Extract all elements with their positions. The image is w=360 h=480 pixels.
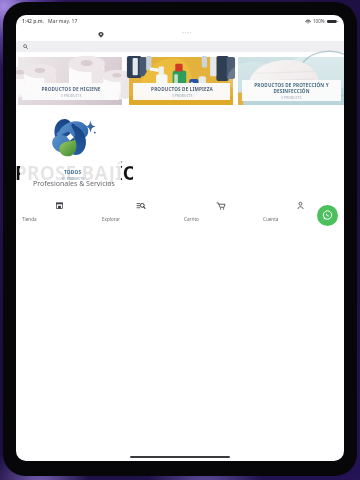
button[interactable]: PRODUCTOS DE PROTECCIÓN Y DESINFECCIÓN: [238, 57, 344, 105]
staticText: 1:42 p.m.: [22, 18, 44, 25]
staticText: PRODUCTOS DE LIMPIEZA: [151, 86, 213, 92]
button[interactable]: PRODUCTOS DE HIGIENE: [18, 57, 122, 105]
staticText: Carrito: [184, 216, 199, 222]
button[interactable]: Explorar: [92, 198, 172, 228]
button[interactable]: WhatsApp: [317, 205, 338, 226]
button[interactable]: Cuenta: [252, 198, 332, 228]
staticText: 100%: [313, 18, 325, 24]
staticText: PRODUCTOS DE PROTECCIÓN Y DESINFECCIÓN: [245, 82, 338, 94]
button[interactable]: Carrito: [172, 198, 252, 228]
staticText: ••••: [182, 30, 192, 37]
staticText: PRODUCTOS DE HIGIENE: [41, 86, 101, 92]
button[interactable]: TODOS: [50, 169, 96, 181]
staticText: PROSE BAJÍO: [16, 160, 133, 186]
staticText: 41 PRODUCTS: [62, 177, 85, 181]
button[interactable]: Tienda: [16, 198, 90, 228]
button[interactable]: PRODUCTOS DE LIMPIEZA: [129, 57, 233, 105]
staticText: 3 PRODUCTS: [61, 94, 82, 98]
staticText: 3 PRODUCTS: [172, 94, 193, 98]
staticText: Profesionales & Servicios: [33, 179, 115, 189]
staticText: 3 PRODUCTS: [281, 96, 302, 100]
staticText: Explorar: [102, 216, 121, 222]
staticText: Mar may. 17: [48, 18, 78, 25]
staticText: Tienda: [22, 216, 37, 222]
button[interactable]: Location: [96, 30, 105, 39]
button[interactable]: Search: [16, 41, 344, 52]
staticText: Cuenta: [263, 216, 279, 222]
staticText: TODOS: [64, 169, 82, 176]
